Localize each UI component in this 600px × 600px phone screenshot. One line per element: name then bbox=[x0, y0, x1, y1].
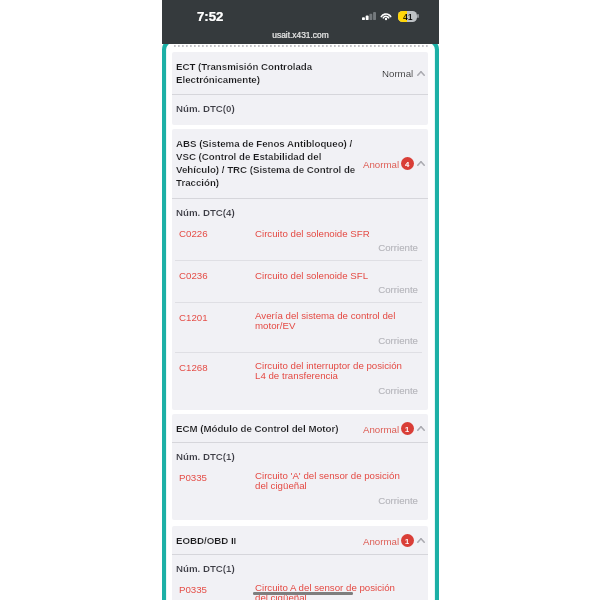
staticText: Circuito del solenoide SFR bbox=[255, 228, 407, 239]
staticText: Anormal bbox=[363, 534, 400, 547]
staticText: EOBD/OBD II bbox=[176, 533, 356, 546]
button[interactable]: ECT (Transmisión Controlada Electrónicam… bbox=[172, 52, 428, 125]
staticText: Anormal bbox=[363, 422, 400, 435]
staticText: Corriente bbox=[172, 282, 418, 295]
staticText: C0226 bbox=[179, 226, 208, 239]
button[interactable]: EOBD/OBD II bbox=[172, 526, 428, 600]
staticText: 41 bbox=[403, 12, 413, 22]
other: Collapse bbox=[417, 538, 425, 543]
button[interactable]: C1201 bbox=[172, 303, 428, 352]
button[interactable]: C0236 bbox=[172, 261, 428, 302]
other: Collapse bbox=[417, 161, 425, 166]
staticText: usait.x431.com bbox=[162, 30, 439, 39]
staticText: Circuito 'A' del sensor de posición del … bbox=[255, 470, 407, 491]
button[interactable]: P0335 bbox=[172, 463, 428, 512]
staticText: Avería del sistema de control del motor/… bbox=[255, 310, 407, 331]
staticText: Núm. DTC(0) bbox=[176, 101, 235, 114]
staticText: C0236 bbox=[179, 268, 208, 281]
button[interactable]: P0335 bbox=[172, 575, 428, 600]
staticText: 1 bbox=[405, 537, 410, 545]
staticText: Circuito A del sensor de posición del ci… bbox=[255, 582, 407, 600]
staticText: 7:52 bbox=[197, 9, 224, 24]
staticText: Corriente bbox=[172, 383, 418, 396]
staticText: Núm. DTC(1) bbox=[176, 449, 235, 462]
button[interactable]: ABS (Sistema de Fenos Antibloqueo) / VSC… bbox=[172, 129, 428, 410]
staticText: 4 bbox=[405, 160, 410, 168]
staticText: Núm. DTC(4) bbox=[176, 205, 235, 218]
staticText: 1 bbox=[405, 425, 410, 433]
staticText: Circuito del interruptor de posición L4 … bbox=[255, 360, 407, 381]
staticText: P0335 bbox=[179, 582, 208, 595]
staticText: Normal bbox=[382, 66, 414, 79]
button[interactable]: ECM (Módulo de Control del Motor) bbox=[172, 414, 428, 520]
staticText: Circuito del solenoide SFL bbox=[255, 270, 407, 281]
staticText: Corriente bbox=[172, 333, 418, 346]
button[interactable]: C0226 bbox=[172, 219, 428, 260]
staticText: C1201 bbox=[179, 310, 208, 323]
button[interactable]: C1268 bbox=[172, 353, 428, 402]
staticText: P0335 bbox=[179, 470, 208, 483]
staticText: ABS (Sistema de Fenos Antibloqueo) / VSC… bbox=[176, 136, 356, 188]
staticText: Núm. DTC(1) bbox=[176, 561, 235, 574]
staticText: ECM (Módulo de Control del Motor) bbox=[176, 421, 356, 434]
staticText: Anormal bbox=[363, 157, 400, 170]
staticText: Corriente bbox=[172, 240, 418, 253]
other: Collapse bbox=[417, 71, 425, 76]
staticText: ECT (Transmisión Controlada Electrónicam… bbox=[176, 59, 356, 85]
other: Collapse bbox=[417, 426, 425, 431]
staticText: Corriente bbox=[172, 493, 418, 506]
staticText: C1268 bbox=[179, 360, 208, 373]
